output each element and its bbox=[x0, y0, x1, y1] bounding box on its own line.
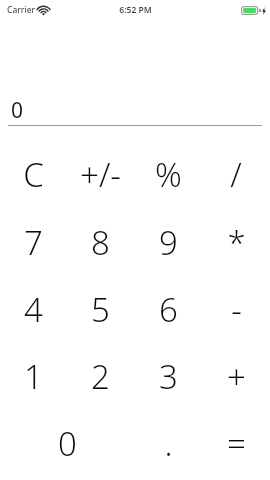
staticText: 1 bbox=[24, 354, 43, 399]
button[interactable]: 9 bbox=[134, 208, 202, 276]
button[interactable]: 6 bbox=[134, 276, 202, 343]
staticText: . bbox=[164, 421, 173, 466]
button[interactable]: Add bbox=[202, 343, 270, 410]
button[interactable]: Decimal point bbox=[134, 410, 202, 477]
button[interactable]: Subtract bbox=[202, 276, 270, 343]
button[interactable]: 5 bbox=[67, 276, 134, 343]
button[interactable]: Clear bbox=[0, 140, 67, 208]
staticText: 2 bbox=[91, 354, 110, 399]
staticText: = bbox=[227, 421, 246, 466]
staticText: 9 bbox=[159, 220, 178, 265]
staticText: 6:52 PM bbox=[119, 4, 152, 16]
staticText: 7 bbox=[24, 220, 43, 265]
staticText: + bbox=[227, 354, 246, 399]
staticText: 6 bbox=[159, 287, 178, 332]
staticText: 4 bbox=[24, 287, 43, 332]
button[interactable]: 2 bbox=[67, 343, 134, 410]
button[interactable]: 4 bbox=[0, 276, 67, 343]
staticText: 0 bbox=[58, 421, 77, 466]
staticText: 3 bbox=[159, 354, 178, 399]
staticText: - bbox=[231, 287, 242, 332]
button[interactable]: Toggle sign bbox=[67, 140, 134, 208]
button[interactable]: 7 bbox=[0, 208, 67, 276]
button[interactable]: Multiply bbox=[202, 208, 270, 276]
button[interactable]: Equals bbox=[202, 410, 270, 477]
staticText: % bbox=[155, 152, 182, 197]
staticText: * bbox=[227, 220, 246, 265]
staticText: / bbox=[230, 152, 242, 197]
button[interactable]: Percent bbox=[134, 140, 202, 208]
button[interactable]: Divide bbox=[202, 140, 270, 208]
staticText: C bbox=[23, 152, 44, 197]
staticText: 8 bbox=[91, 220, 110, 265]
staticText: 5 bbox=[91, 287, 110, 332]
staticText: +/- bbox=[80, 152, 121, 197]
button[interactable]: 0 bbox=[0, 410, 134, 477]
staticText: 0 bbox=[11, 96, 24, 125]
button[interactable]: 1 bbox=[0, 343, 67, 410]
staticText: Carrier bbox=[7, 4, 36, 16]
button[interactable]: 3 bbox=[134, 343, 202, 410]
button[interactable]: 8 bbox=[67, 208, 134, 276]
